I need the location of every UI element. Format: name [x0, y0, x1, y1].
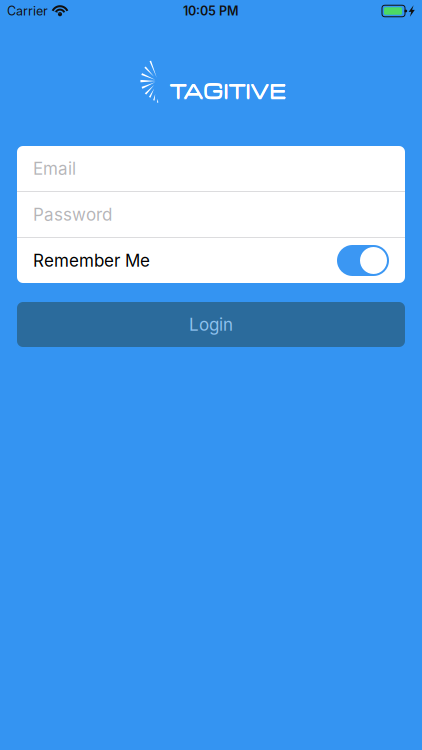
staticText: TAGITIVE — [170, 77, 286, 103]
staticText: Carrier — [7, 3, 48, 18]
button[interactable]: Email — [17, 146, 405, 191]
staticText: Login — [189, 314, 233, 335]
staticText: TAGITIVE — [169, 76, 285, 103]
staticText: Password — [33, 204, 112, 225]
staticText: Remember Me — [33, 250, 150, 271]
staticText: 10:05 PM — [183, 3, 239, 18]
button[interactable]: Password — [17, 192, 405, 237]
staticText: TAGITIVE — [169, 78, 285, 104]
staticText: Email — [33, 158, 76, 179]
button[interactable]: Remember Me — [17, 238, 405, 283]
staticText: TAGITIVE — [169, 77, 285, 103]
button[interactable]: Login — [17, 302, 405, 347]
